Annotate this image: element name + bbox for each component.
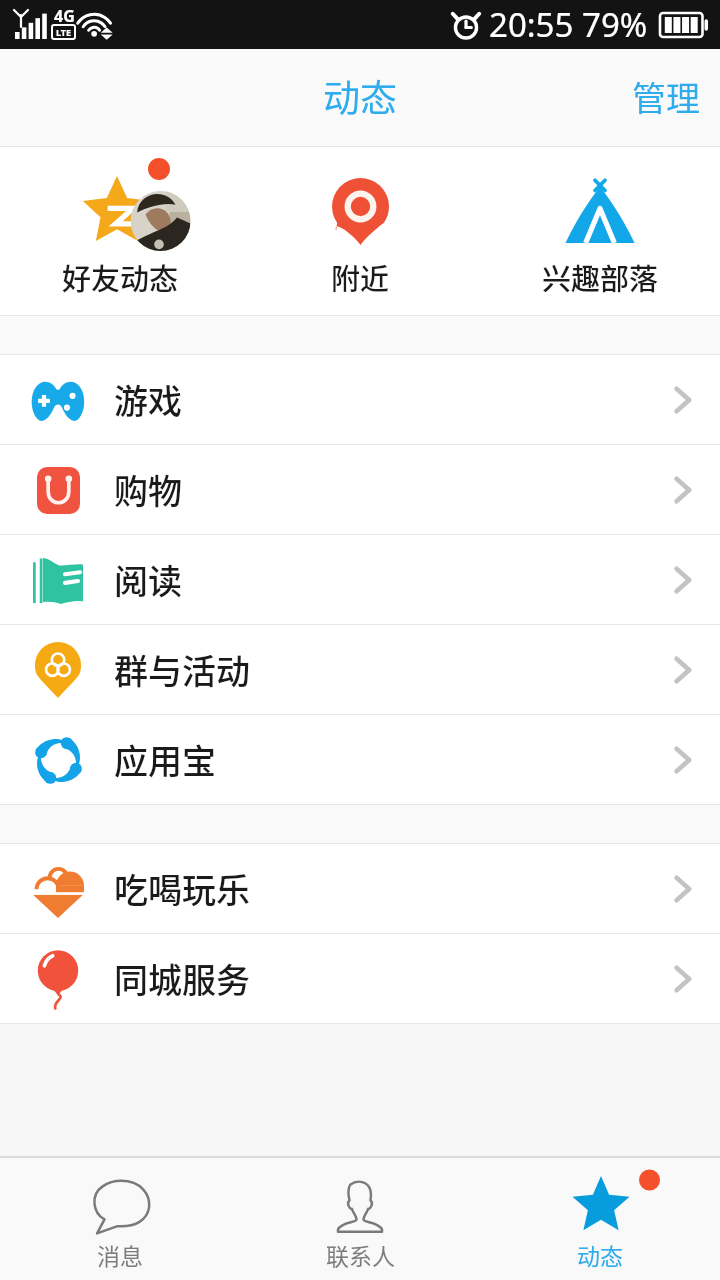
staticText: 吃喝玩乐 xyxy=(114,864,250,913)
button[interactable]: 应用宝 xyxy=(0,715,720,804)
staticText: 购物 xyxy=(114,465,182,514)
button[interactable]: 吃喝玩乐 xyxy=(0,844,720,933)
staticText: 动态 xyxy=(577,1238,623,1271)
button[interactable]: 阅读 xyxy=(0,535,720,624)
staticText: 消息 xyxy=(97,1238,143,1271)
staticText: 同城服务 xyxy=(114,954,250,1003)
button[interactable]: 购物 xyxy=(0,445,720,534)
staticText: 附近 xyxy=(331,256,390,298)
button[interactable]: 游戏 xyxy=(0,355,720,444)
button[interactable]: 动态 xyxy=(480,1158,720,1280)
button[interactable]: 消息 xyxy=(0,1158,240,1280)
staticText: 20:55 xyxy=(489,2,574,47)
staticText: 动态 xyxy=(323,69,397,123)
staticText: LTE xyxy=(56,26,72,38)
button[interactable]: 联系人 xyxy=(240,1158,480,1280)
staticText: 游戏 xyxy=(114,375,182,424)
staticText: 联系人 xyxy=(326,1238,395,1271)
staticText: 兴趣部落 xyxy=(542,256,659,298)
button[interactable]: 兴趣部落 xyxy=(480,147,720,315)
staticText: 管理 xyxy=(632,72,700,121)
staticText: 应用宝 xyxy=(114,735,216,784)
button[interactable]: 群与活动 xyxy=(0,625,720,714)
staticText: 4G xyxy=(54,5,75,27)
staticText: 阅读 xyxy=(114,555,182,604)
staticText: 群与活动 xyxy=(114,645,250,694)
button[interactable]: 附近 xyxy=(240,147,480,315)
staticText: 79% xyxy=(582,2,648,47)
button[interactable]: 同城服务 xyxy=(0,934,720,1023)
button[interactable]: 管理 xyxy=(608,58,720,139)
button[interactable]: 好友动态 xyxy=(0,147,240,315)
staticText: 好友动态 xyxy=(62,256,179,298)
